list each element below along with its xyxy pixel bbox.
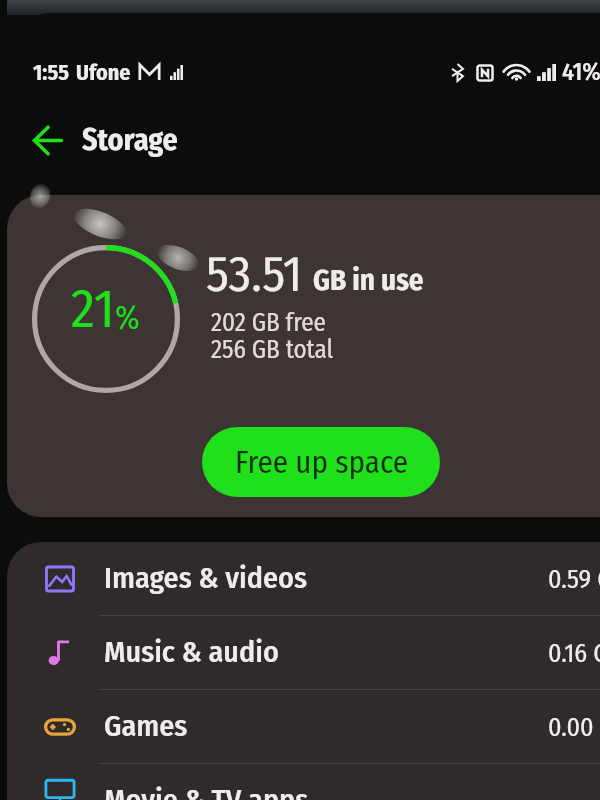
staticText: Images & videos — [104, 560, 308, 596]
button[interactable]: Music & audio — [7, 616, 600, 689]
button[interactable]: Free up space — [202, 427, 440, 497]
staticText: 1:55 — [33, 59, 70, 85]
button[interactable]: Games — [7, 690, 600, 763]
staticText: Storage — [82, 122, 178, 158]
staticText: 41% — [562, 58, 600, 87]
staticText: 21 — [71, 277, 115, 342]
staticText: Games — [104, 708, 188, 744]
staticText: GB in use — [313, 263, 424, 298]
staticText: Movie & TV apps — [104, 782, 309, 800]
staticText: 0.59 G — [548, 564, 600, 595]
staticText: 0.16 G — [548, 638, 600, 669]
staticText: Music & audio — [104, 634, 279, 670]
staticText: 256 GB total — [211, 335, 334, 365]
button[interactable]: Back — [20, 113, 74, 167]
staticText: 53.51 — [206, 244, 303, 304]
button[interactable]: Movie & TV apps — [7, 764, 600, 800]
staticText: Free up space — [235, 444, 408, 481]
button[interactable]: Images & videos — [7, 542, 600, 615]
staticText: 202 GB free — [211, 308, 326, 338]
staticText: % — [115, 298, 140, 338]
staticText: 0.00 G — [548, 712, 600, 743]
staticText: Ufone — [76, 59, 131, 85]
